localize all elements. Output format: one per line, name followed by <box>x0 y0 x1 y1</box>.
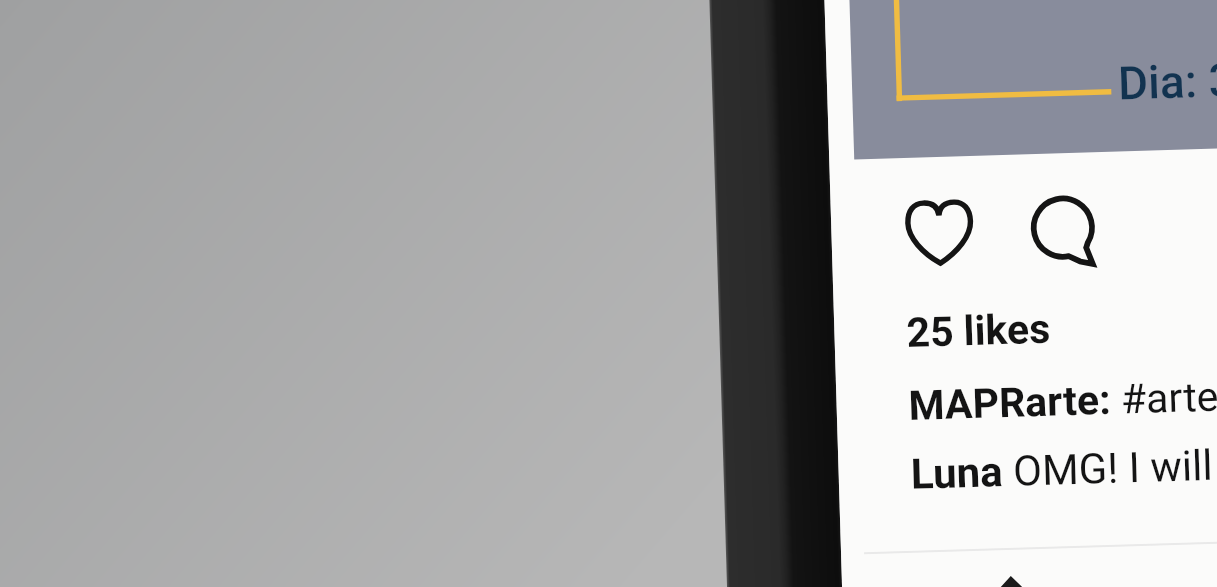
staticText: MAPRarte: #arte <box>908 373 1217 430</box>
button[interactable]: Like <box>904 199 974 267</box>
staticText: Dia: 3 <box>1117 53 1217 110</box>
button[interactable]: Comment <box>1033 196 1100 268</box>
button[interactable]: Home <box>980 575 1044 587</box>
staticText: Luna OMG! I will <box>910 441 1213 499</box>
staticText: 25 likes <box>906 305 1051 357</box>
